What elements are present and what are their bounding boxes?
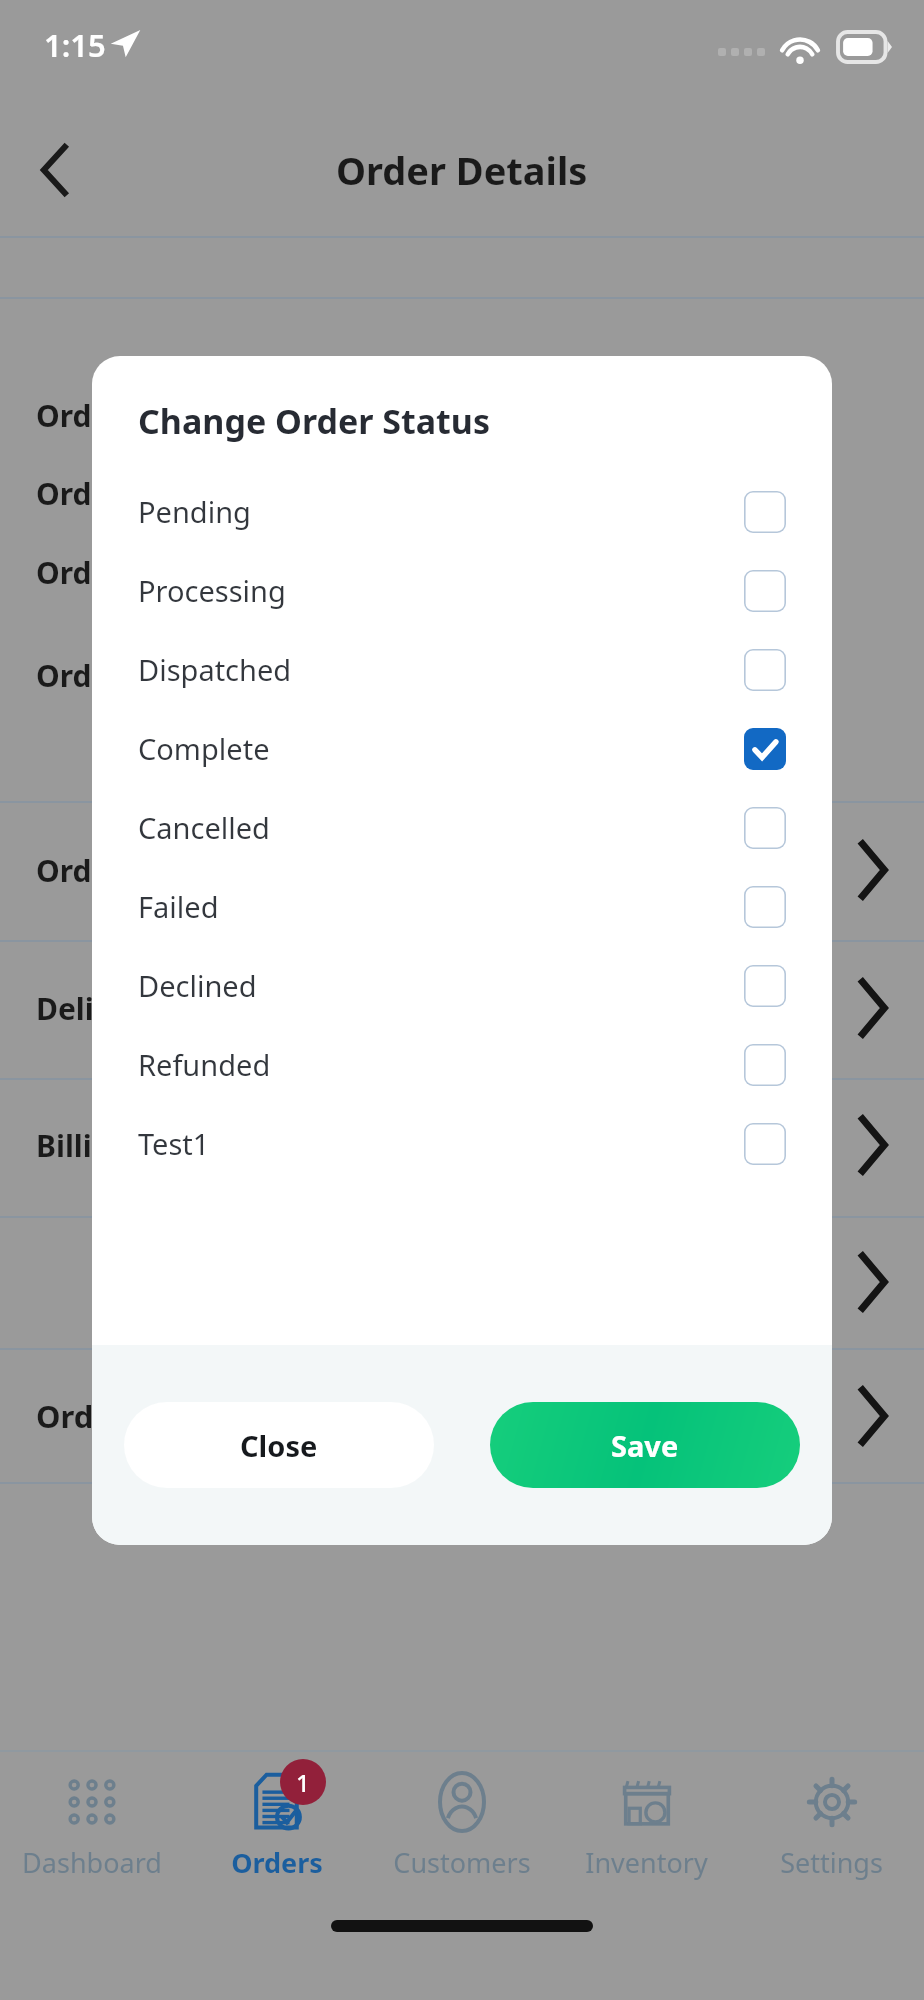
staticText: Test1 (138, 1124, 210, 1163)
staticText: Settings (780, 1844, 883, 1881)
staticText: Complete (138, 729, 270, 768)
staticText: Pending (138, 492, 251, 531)
staticText: Cancelled (138, 808, 270, 847)
button[interactable]: Checked (744, 728, 786, 770)
staticText: Customers (393, 1844, 531, 1881)
staticText: 1 (296, 1766, 310, 1799)
staticText: Failed (138, 887, 219, 926)
button[interactable]: Dispatched (92, 630, 832, 709)
button[interactable]: Processing (92, 551, 832, 630)
staticText: Close (240, 1426, 318, 1465)
button[interactable]: Inventory (554, 1752, 739, 1902)
button[interactable]: Unchecked (744, 570, 786, 612)
button[interactable]: Customers (369, 1752, 554, 1902)
staticText: Save (611, 1426, 679, 1465)
button[interactable]: Unchecked (744, 965, 786, 1007)
staticText: Inventory (585, 1844, 708, 1881)
button[interactable]: Deli (0, 964, 924, 1052)
staticText: Order (36, 395, 123, 436)
staticText: Processing (138, 571, 286, 610)
staticText: Orders (231, 1844, 323, 1881)
staticText: Order (36, 552, 123, 593)
button[interactable]: Test1 (92, 1104, 832, 1183)
staticText: Deli (36, 988, 94, 1029)
button[interactable]: Settings (739, 1752, 924, 1902)
staticText: Order Details (336, 144, 588, 196)
button[interactable]: Order Notes (0, 1350, 924, 1482)
button[interactable]: 1 (184, 1752, 369, 1902)
button[interactable]: Unchecked (744, 807, 786, 849)
button[interactable]: Close (124, 1402, 434, 1488)
button[interactable]: Failed (92, 867, 832, 946)
button[interactable]: Billi (0, 1101, 924, 1189)
staticText: Declined (138, 966, 257, 1005)
button[interactable]: Unchecked (744, 1044, 786, 1086)
staticText: Order (36, 655, 123, 696)
button[interactable]: Declined (92, 946, 832, 1025)
staticText: Order Notes (36, 1395, 226, 1437)
staticText: 1:15 (44, 24, 106, 66)
button[interactable]: Pending (92, 472, 832, 551)
button[interactable]: Refunded (92, 1025, 832, 1104)
button[interactable]: Save (490, 1402, 800, 1488)
staticText: Billi (36, 1125, 92, 1166)
button[interactable]: Unchecked (744, 886, 786, 928)
staticText: Dashboard (22, 1844, 162, 1881)
button[interactable]: Order (0, 826, 924, 914)
staticText: Refunded (138, 1045, 271, 1084)
button[interactable]: Unchecked (744, 1123, 786, 1165)
staticText: Order (36, 850, 123, 891)
button[interactable]: Dashboard (0, 1752, 184, 1902)
staticText: Order (36, 473, 123, 514)
staticText: Dispatched (138, 650, 292, 689)
staticText: Change Order Status (138, 398, 491, 444)
button[interactable]: Unchecked (744, 649, 786, 691)
button[interactable]: Back (20, 135, 90, 205)
button[interactable]: Complete (92, 709, 832, 788)
button[interactable]: Cancelled (92, 788, 832, 867)
button[interactable]: Unchecked (744, 491, 786, 533)
